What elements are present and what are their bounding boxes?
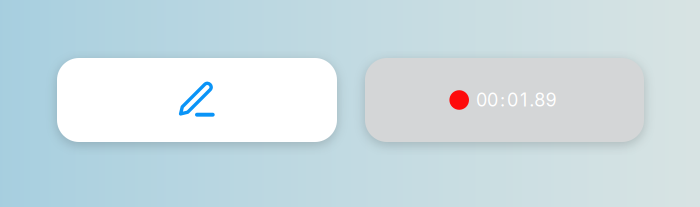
staticText: 8: [534, 89, 545, 111]
staticText: 9: [545, 89, 556, 111]
staticText: :: [500, 89, 505, 111]
button[interactable]: Compose: [57, 58, 337, 142]
staticText: 0: [487, 89, 498, 111]
staticText: 0: [507, 89, 518, 111]
staticText: 1: [520, 89, 527, 111]
staticText: 0: [476, 89, 487, 111]
staticText: .: [529, 89, 534, 111]
button[interactable]: Recording timer, 00:01.89: [365, 58, 644, 142]
